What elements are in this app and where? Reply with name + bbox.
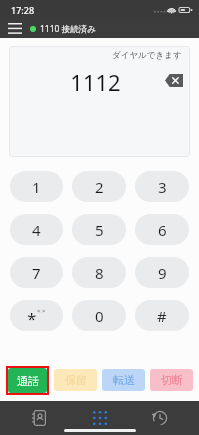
button[interactable]: 転送 xyxy=(102,369,145,391)
staticText: 2 xyxy=(95,177,104,197)
button[interactable]: 9 xyxy=(135,257,189,288)
button[interactable]: Backspace xyxy=(164,72,184,88)
button[interactable]: 3 xyxy=(135,171,189,202)
staticText: 5 xyxy=(95,220,104,240)
staticText: < > xyxy=(37,307,46,315)
button[interactable]: 1 xyxy=(10,171,63,202)
staticText: 1 xyxy=(32,177,41,197)
staticText: 3 xyxy=(158,177,167,197)
button[interactable]: Menu xyxy=(0,19,30,38)
button[interactable]: * xyxy=(10,300,63,331)
button[interactable]: # xyxy=(135,300,189,331)
button[interactable]: 5 xyxy=(72,214,126,245)
staticText: # xyxy=(157,306,167,326)
button[interactable]: Contacts xyxy=(17,403,61,433)
staticText: 保留 xyxy=(65,373,87,387)
button[interactable]: 保留 xyxy=(54,369,97,391)
staticText: 切断 xyxy=(161,373,183,387)
staticText: 7 xyxy=(32,263,41,283)
staticText: 0 xyxy=(95,306,104,326)
button[interactable]: 通話 xyxy=(8,368,47,393)
button[interactable]: 切断 xyxy=(150,369,193,391)
button[interactable]: Dialpad xyxy=(78,403,122,433)
button[interactable]: 2 xyxy=(72,171,126,202)
staticText: 1110 接続済み xyxy=(40,23,96,35)
staticText: ダイヤルできます xyxy=(112,50,182,61)
staticText: 通話 xyxy=(17,374,39,388)
button[interactable]: 4 xyxy=(10,214,63,245)
button[interactable]: 0 xyxy=(72,300,126,331)
button[interactable]: 8 xyxy=(72,257,126,288)
staticText: 転送 xyxy=(113,373,135,387)
button[interactable]: 7 xyxy=(10,257,63,288)
button[interactable]: History xyxy=(138,403,182,433)
staticText: 17:28 xyxy=(11,4,35,16)
staticText: 8 xyxy=(95,263,104,283)
staticText: 1112 xyxy=(70,67,121,97)
staticText: 6 xyxy=(158,220,167,240)
staticText: 9 xyxy=(158,263,167,283)
staticText: * xyxy=(27,307,37,330)
staticText: 4 xyxy=(32,220,41,240)
button[interactable]: 6 xyxy=(135,214,189,245)
